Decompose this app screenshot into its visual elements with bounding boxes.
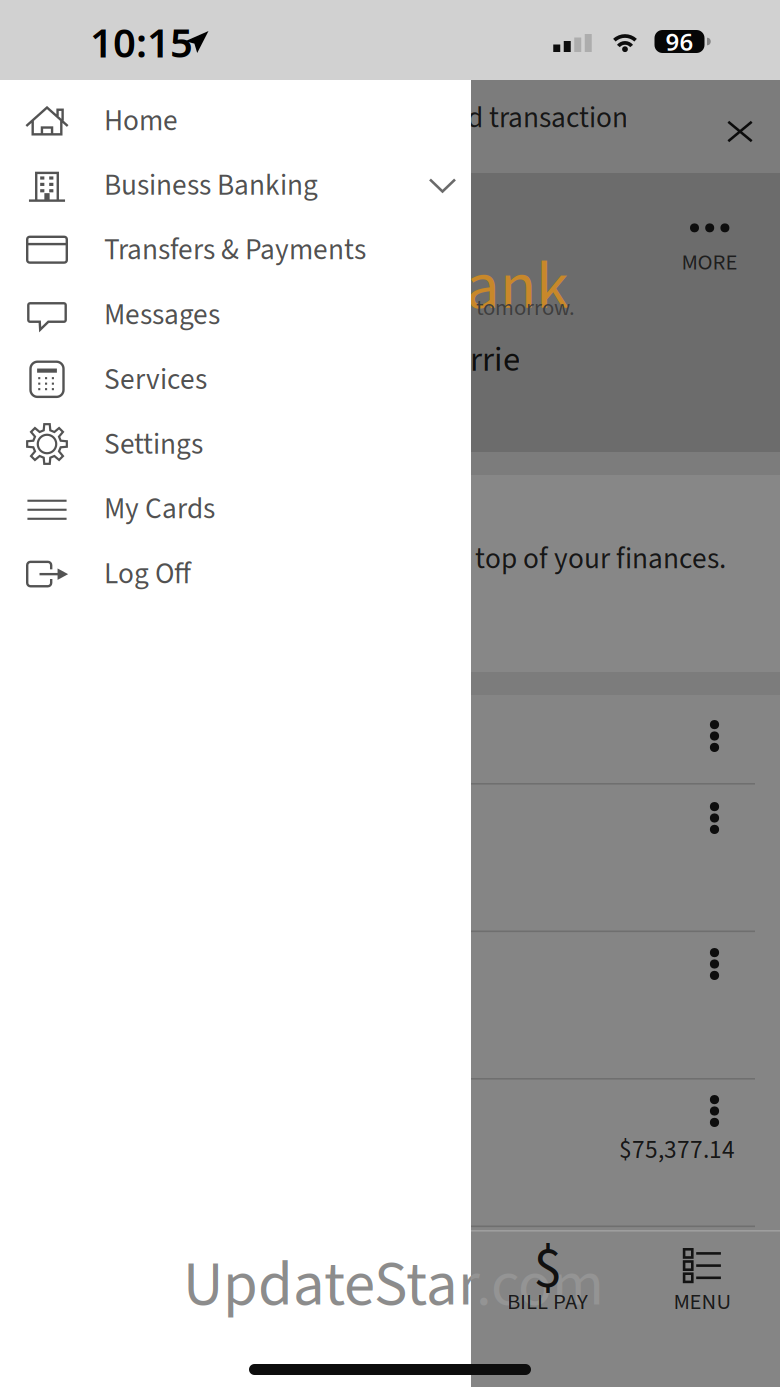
button[interactable]: $ (472, 1240, 622, 1336)
staticText: UpdateStar.com (183, 1240, 604, 1330)
button[interactable]: Close (702, 93, 778, 169)
staticText: BILL PAY (507, 1286, 588, 1318)
staticText: UpdateStar.com (183, 1240, 604, 1330)
staticText: Transfers & Payments (104, 229, 366, 271)
staticText: 96 (665, 25, 693, 58)
staticText: MORE (681, 246, 737, 279)
staticText: $75,377.14 (619, 1132, 735, 1168)
staticText: Settings (104, 424, 203, 465)
staticText: Services (104, 359, 207, 401)
button[interactable]: Services (0, 347, 471, 412)
button[interactable]: Settings (0, 411, 471, 476)
button[interactable]: My Cards (0, 476, 471, 541)
staticText: r tomorrow. (463, 292, 575, 324)
button[interactable]: Log Off (0, 541, 471, 606)
staticText: Messages (104, 294, 220, 336)
staticText: bank (430, 239, 569, 334)
button[interactable]: Business Banking (0, 152, 471, 217)
button[interactable]: MORE (654, 213, 764, 289)
staticText: Business Banking (104, 165, 318, 206)
staticText: d transaction (467, 97, 628, 139)
button[interactable]: Transfers & Payments (0, 217, 471, 282)
button[interactable]: Messages (0, 282, 471, 347)
staticText: $ (533, 1228, 561, 1310)
staticText: 10:15 (90, 15, 193, 69)
button[interactable]: Home (0, 88, 471, 153)
button[interactable]: MENU (627, 1240, 777, 1336)
staticText: My Cards (104, 488, 215, 530)
staticText: arrie (453, 335, 520, 385)
staticText: Log Off (104, 553, 191, 595)
staticText: Home (104, 100, 178, 142)
staticText: top of your finances. (475, 538, 726, 580)
staticText: MENU (673, 1286, 731, 1318)
